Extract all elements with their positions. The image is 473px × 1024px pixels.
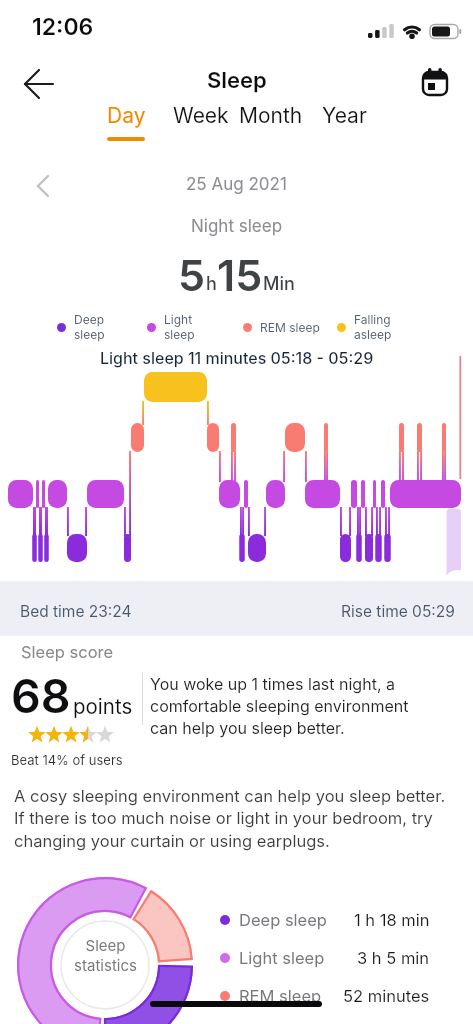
button[interactable]: Month — [231, 103, 311, 145]
staticText: You woke up 1 times last night, a comfor… — [150, 674, 409, 737]
button[interactable] — [416, 62, 456, 102]
button[interactable] — [28, 170, 60, 202]
staticText: 5 — [178, 249, 206, 301]
staticText: 52 minutes — [343, 986, 430, 1006]
staticText: Year — [322, 103, 367, 128]
staticText: 3 h 5 min — [357, 948, 430, 968]
staticText: REM sleep — [260, 320, 320, 335]
button[interactable]: Year — [304, 103, 384, 145]
staticText: 68 — [11, 668, 71, 724]
staticText: Week — [173, 103, 229, 128]
staticText: Night sleep — [191, 216, 283, 237]
staticText: Bed time 23:24 — [20, 602, 132, 621]
staticText: 12:06 — [32, 13, 94, 41]
staticText: 15 — [217, 249, 263, 301]
staticText: Sleep — [207, 67, 267, 94]
staticText: points — [73, 694, 133, 719]
staticText: REM sleep — [239, 986, 322, 1006]
staticText: 1 h 18 min — [354, 910, 430, 930]
staticText: Day — [107, 103, 146, 128]
staticText: Deep sleep — [239, 910, 327, 930]
staticText: 25 Aug 2021 — [186, 174, 287, 195]
button[interactable]: Day — [86, 103, 166, 145]
staticText: Sleep score — [21, 642, 114, 662]
staticText: Light sleep — [164, 312, 195, 342]
staticText: Min — [263, 273, 295, 295]
staticText: A cosy sleeping environment can help you… — [14, 786, 446, 851]
staticText: Rise time 05:29 — [341, 602, 455, 621]
button[interactable] — [14, 62, 58, 106]
staticText: Month — [239, 103, 303, 128]
staticText: Light sleep — [239, 948, 325, 968]
staticText: Beat 14% of users — [11, 752, 123, 768]
staticText: Sleep statistics — [74, 936, 137, 975]
staticText: Deep sleep — [74, 312, 105, 342]
staticText: Light sleep 11 minutes 05:18 - 05:29 — [100, 348, 374, 367]
staticText: Falling asleep — [354, 312, 392, 342]
button[interactable]: Week — [161, 103, 241, 145]
staticText: h — [206, 273, 217, 295]
